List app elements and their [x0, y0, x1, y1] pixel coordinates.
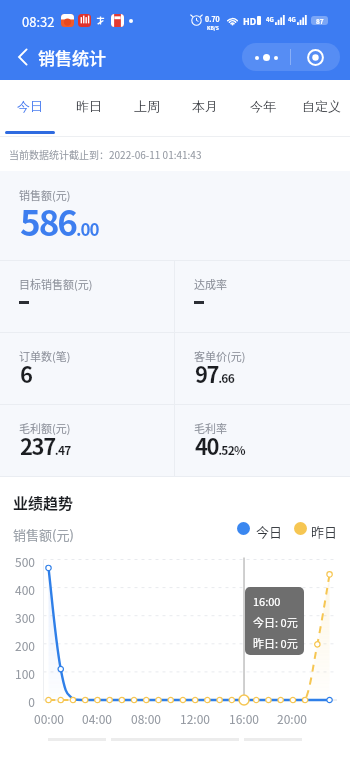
staticText: 0.70 [205, 14, 220, 24]
staticText: 08:00 [125, 710, 167, 727]
staticText: 500 [0, 553, 35, 570]
button[interactable]: 上周 [118, 80, 176, 132]
button[interactable]: 今年 [234, 80, 292, 132]
staticText: 300 [0, 609, 35, 626]
staticText: 昨日: 0元 [253, 635, 298, 651]
staticText: 200 [0, 637, 35, 654]
staticText: 销售额(元) [13, 525, 74, 544]
staticText: 今年 [250, 98, 276, 114]
button[interactable]: 订单数(笔) [0, 333, 174, 404]
staticText: 今日: 0元 [253, 614, 298, 630]
staticText: 上周 [134, 98, 160, 114]
staticText: KB/S [207, 24, 219, 31]
staticText: 订单数(笔) [19, 348, 71, 364]
staticText: 今日 [256, 522, 283, 541]
button[interactable]: More options [242, 43, 290, 71]
staticText: 20:00 [271, 710, 313, 727]
staticText: 16:00 [253, 593, 281, 609]
staticText: 08:32 [22, 12, 55, 31]
staticText: 达成率 [194, 276, 227, 292]
staticText: 目标销售额(元) [19, 276, 93, 292]
staticText: 销售额(元) [19, 187, 71, 203]
staticText: 04:00 [76, 710, 118, 727]
button[interactable]: 目标销售额(元) [0, 261, 174, 332]
staticText: 237.47 [20, 429, 71, 461]
staticText: 4G [288, 15, 296, 24]
button[interactable]: 达成率 [175, 261, 350, 332]
staticText: 业绩趋势 [13, 492, 74, 514]
staticText: 销售统计 [38, 45, 106, 70]
staticText: 今日 [17, 98, 43, 114]
staticText: 100 [0, 665, 35, 682]
staticText: 毛利额(元) [19, 420, 71, 436]
staticText: 本月 [192, 98, 218, 114]
staticText: 00:00 [28, 710, 70, 727]
button[interactable]: 客单价(元) [175, 333, 350, 404]
staticText: 40.52% [195, 429, 245, 461]
staticText: 16:00 [223, 710, 265, 727]
button[interactable]: 毛利率 [175, 405, 350, 476]
staticText: 昨日 [311, 522, 338, 541]
staticText: 0 [0, 693, 35, 710]
staticText: 87 [316, 16, 324, 25]
button[interactable]: Close mini program [291, 43, 340, 71]
staticText: 12:00 [174, 710, 216, 727]
staticText: 586.00 [20, 195, 99, 246]
staticText: 4G [266, 15, 274, 24]
staticText: 自定义 [302, 98, 341, 114]
staticText: HD [243, 15, 257, 28]
button[interactable]: 销售额(元) [0, 171, 350, 260]
staticText: 400 [0, 581, 35, 598]
button[interactable]: 今日 [0, 80, 59, 132]
button[interactable]: 毛利额(元) [0, 405, 174, 476]
staticText: 当前数据统计截止到：2022-06-11 01:41:43 [9, 147, 202, 161]
staticText: 昨日 [76, 98, 102, 114]
button[interactable]: 自定义 [292, 80, 350, 132]
staticText: 97.66 [195, 357, 235, 389]
button[interactable]: 昨日 [59, 80, 118, 132]
staticText: 毛利率 [194, 420, 227, 436]
button[interactable]: 本月 [176, 80, 234, 132]
staticText: 6 [20, 357, 32, 389]
button[interactable]: Back [5, 39, 41, 75]
staticText: 客单价(元) [194, 348, 246, 364]
